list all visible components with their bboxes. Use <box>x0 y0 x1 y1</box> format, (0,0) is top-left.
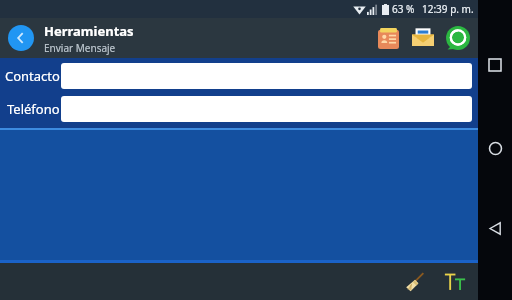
button[interactable]: WhatsApp <box>442 22 474 54</box>
button[interactable] <box>61 96 472 122</box>
button[interactable]: Back <box>8 25 34 51</box>
staticText: 12:39 p. m. <box>422 2 474 16</box>
button[interactable]: Text size <box>440 267 470 297</box>
staticText: Enviar Mensaje <box>44 41 116 55</box>
button[interactable]: SMS <box>408 23 438 53</box>
button[interactable]: Recents <box>482 52 508 78</box>
staticText: 63 % <box>392 2 415 16</box>
staticText: Teléfono <box>7 100 60 118</box>
button[interactable]: Home <box>482 135 508 161</box>
button[interactable] <box>61 63 472 89</box>
staticText: Contacto <box>5 67 60 85</box>
button[interactable]: Back <box>482 215 508 241</box>
button[interactable]: Contacts <box>373 23 403 53</box>
button[interactable]: Clear <box>400 267 430 297</box>
staticText: Herramientas <box>44 22 134 40</box>
